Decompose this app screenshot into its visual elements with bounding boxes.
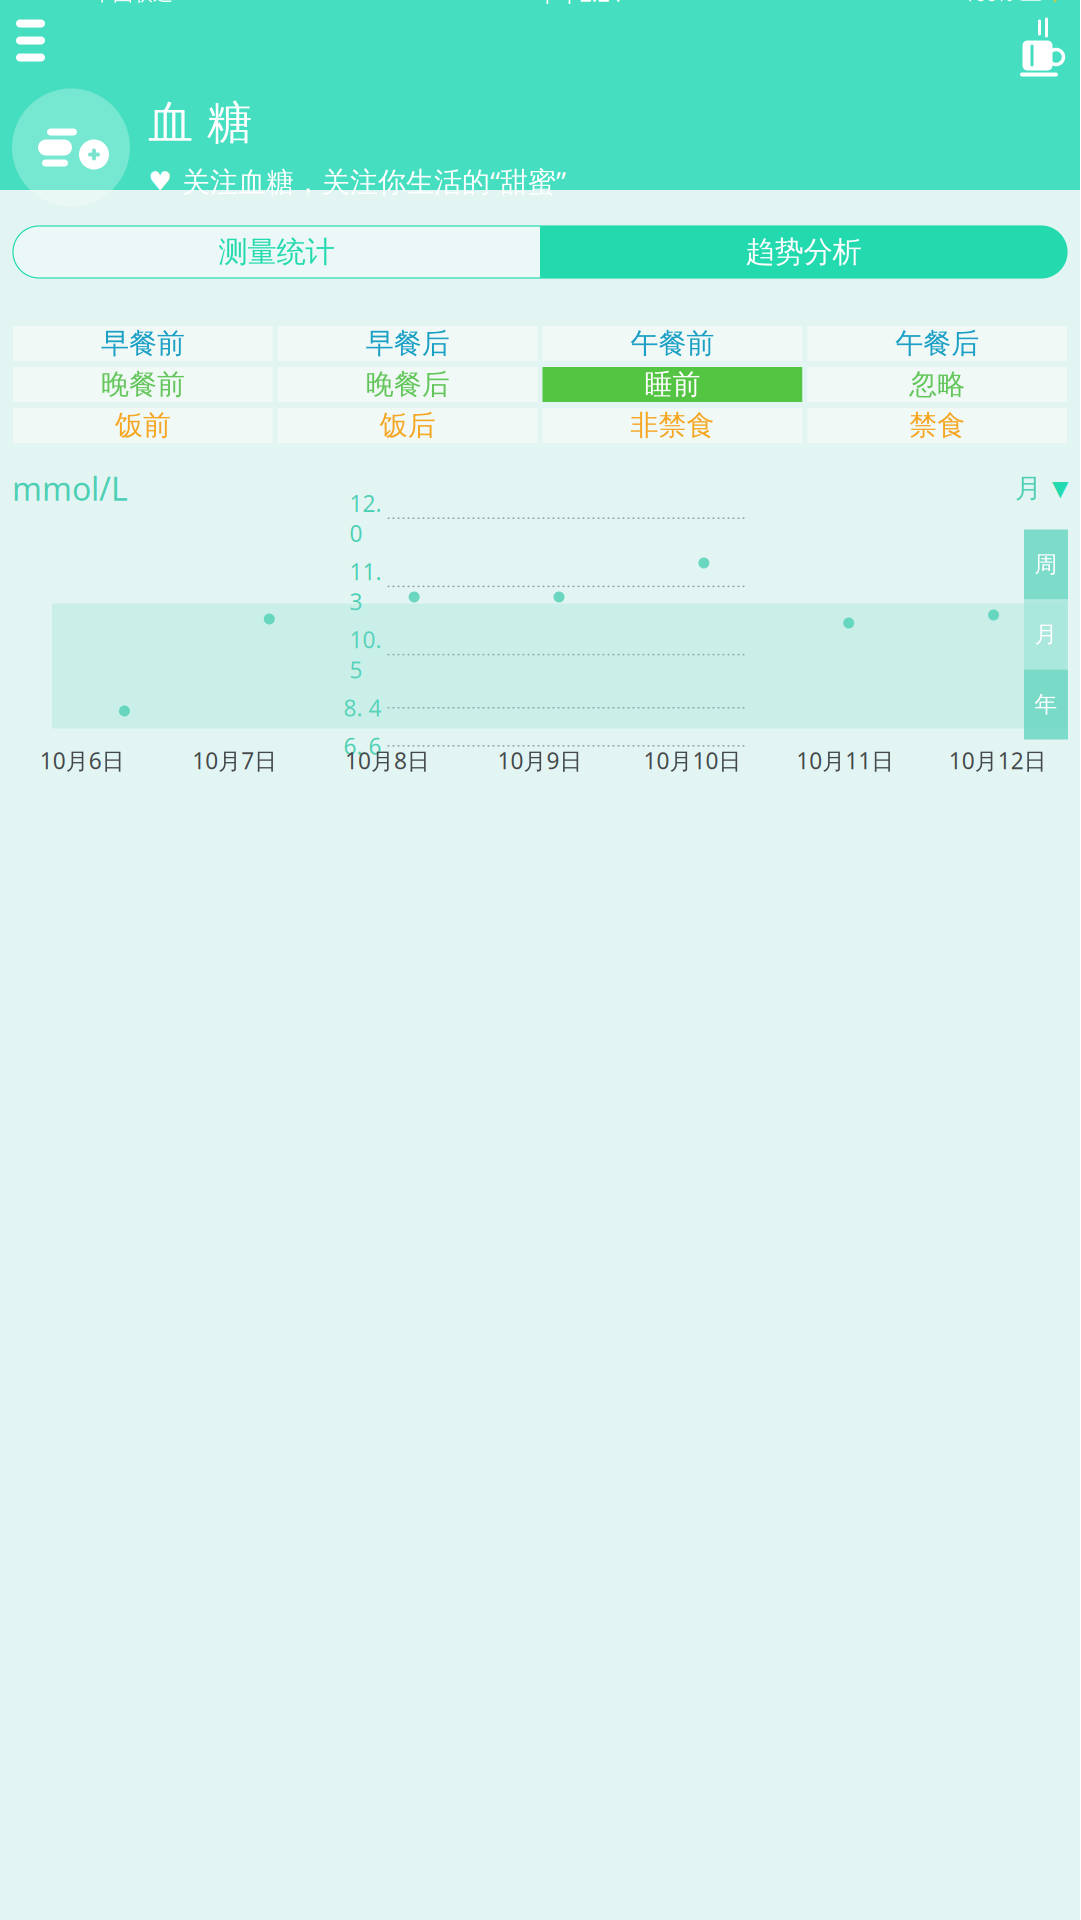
button[interactable]: 晚餐后 [278,367,538,402]
staticText: 早餐后 [366,326,450,361]
staticText: 10月11日 [796,745,894,776]
staticText: 饭后 [380,408,436,443]
staticText: 月 [1015,472,1042,505]
staticText: 10月12日 [949,745,1047,776]
staticText: mmol/L [12,467,128,509]
staticText: 午餐前 [630,326,714,361]
staticText: 午餐后 [895,326,979,361]
button[interactable]: 趋势分析 [540,226,1067,278]
button[interactable]: 年 [1024,669,1068,739]
staticText: 趋势分析 [745,234,861,270]
button[interactable]: 禁食 [807,408,1067,443]
staticText: 10月10日 [644,745,742,776]
button[interactable]: 饭后 [278,408,538,443]
button[interactable]: 月 [1024,599,1068,669]
button[interactable]: 测量统计 [13,226,540,278]
button[interactable]: 早餐后 [278,326,538,361]
staticText: 10月8日 [345,745,430,776]
staticText: 10月7日 [192,745,277,776]
staticText: 禁食 [909,408,965,443]
staticText: 年 [1034,691,1057,718]
staticText: 血 糖 [148,95,252,151]
staticText: 睡前 [644,367,700,402]
staticText: 晚餐后 [366,367,450,402]
button[interactable]: 早餐前 [13,326,273,361]
staticText: 11. 3 [349,556,381,616]
staticText: ♥ [148,166,172,196]
button[interactable]: 午餐后 [807,326,1067,361]
button[interactable]: 晚餐前 [13,367,273,402]
button[interactable]: 饭前 [13,408,273,443]
staticText: 10月9日 [497,745,582,776]
staticText: 10月6日 [40,745,125,776]
staticText: 忽略 [909,367,965,402]
staticText: 100% [964,0,1014,7]
button[interactable]: Coffee [1014,11,1072,82]
staticText: 12. 0 [349,488,381,548]
button[interactable]: 周 [1024,529,1068,599]
button[interactable]: 午餐前 [542,326,802,361]
staticText: 10. 5 [349,624,381,685]
staticText: 测量统计 [218,234,334,270]
staticText: 饭前 [115,408,171,443]
staticText: 关注血糖，关注你生活的“甜蜜” [182,163,566,200]
staticText: ▼ [1052,476,1068,500]
staticText: ⚡ [1049,0,1069,3]
staticText: 中国联通 [93,0,173,6]
staticText: 下午2:24 [537,0,621,8]
staticText: 6. 6 [343,731,381,761]
staticText: 早餐前 [101,326,185,361]
button[interactable]: 非禁食 [542,408,802,443]
button[interactable]: Menu [8,11,53,69]
button[interactable]: 睡前 [542,367,802,402]
staticText: 周 [1034,551,1057,578]
button[interactable]: 忽略 [807,367,1067,402]
staticText: 晚餐前 [101,367,185,402]
staticText: 8. 4 [343,693,381,723]
staticText: 非禁食 [630,408,714,443]
staticText: 月 [1034,621,1057,648]
button[interactable]: 月 [1015,472,1068,505]
